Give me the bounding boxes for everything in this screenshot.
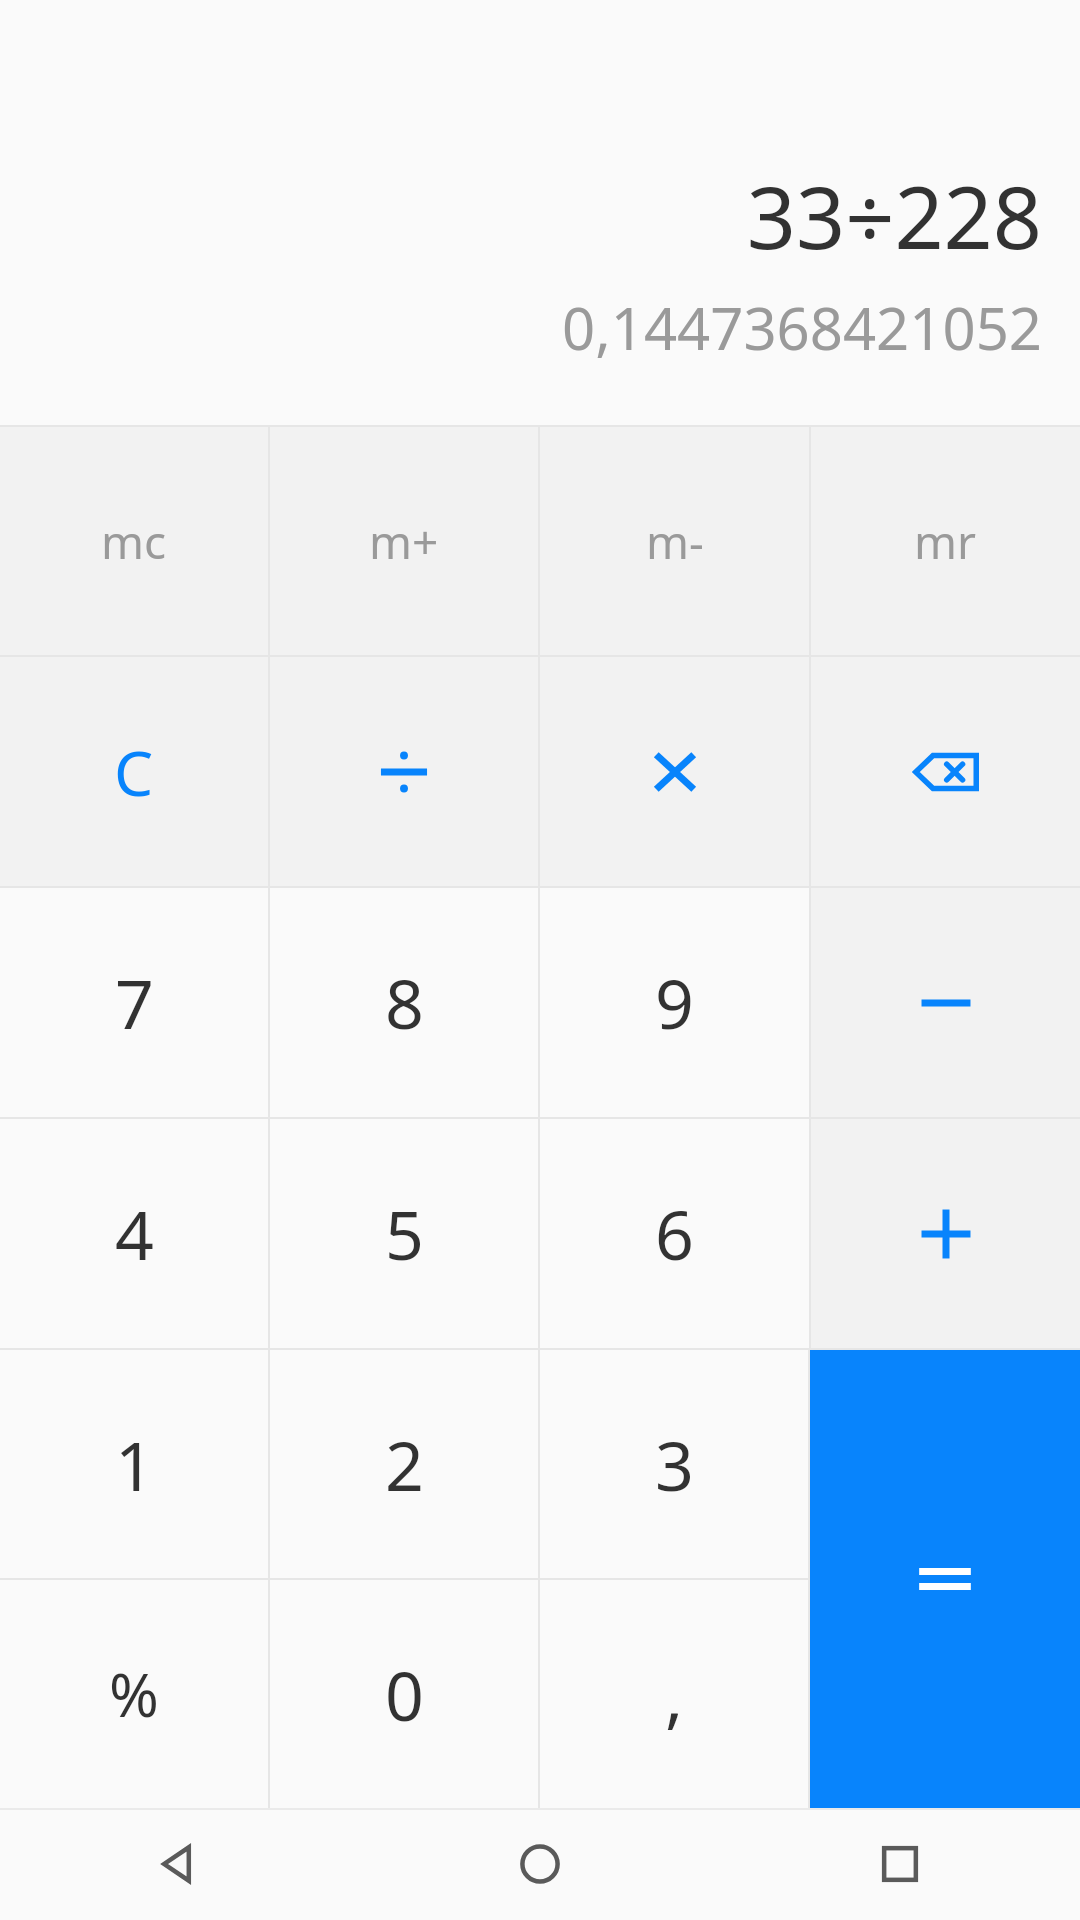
button[interactable]: 6: [540, 1119, 809, 1348]
button[interactable]: Divide: [270, 657, 538, 886]
button[interactable]: Backspace: [811, 657, 1080, 886]
button[interactable]: mr: [811, 427, 1080, 655]
staticText: ,: [665, 1648, 684, 1741]
staticText: C: [114, 730, 154, 814]
button[interactable]: 3: [540, 1350, 808, 1578]
staticText: m+: [369, 510, 439, 573]
staticText: %: [109, 1653, 159, 1735]
staticText: m-: [646, 510, 704, 573]
staticText: 7: [115, 956, 154, 1049]
button[interactable]: 1: [0, 1350, 268, 1578]
staticText: mc: [101, 510, 167, 573]
staticText: 33÷228: [746, 157, 1042, 274]
button[interactable]: Recents: [720, 1808, 1080, 1920]
staticText: 2: [385, 1418, 424, 1511]
staticText: 0,1447368421052: [561, 288, 1042, 367]
button[interactable]: ,: [540, 1580, 808, 1808]
button[interactable]: Plus: [811, 1119, 1080, 1348]
button[interactable]: Equals: [810, 1350, 1080, 1808]
staticText: mr: [914, 510, 977, 573]
button[interactable]: Back: [0, 1808, 360, 1920]
staticText: 6: [655, 1187, 694, 1280]
staticText: 5: [385, 1187, 424, 1280]
button[interactable]: mc: [0, 427, 268, 655]
staticText: 9: [655, 956, 694, 1049]
button[interactable]: 0: [270, 1580, 538, 1808]
staticText: 4: [115, 1187, 154, 1280]
button[interactable]: C: [0, 657, 268, 886]
staticText: 0: [385, 1648, 424, 1741]
button[interactable]: 5: [270, 1119, 538, 1348]
staticText: 8: [385, 956, 424, 1049]
button[interactable]: Minus: [811, 888, 1080, 1117]
button[interactable]: Multiply: [540, 657, 809, 886]
button[interactable]: %: [0, 1580, 268, 1808]
button[interactable]: 2: [270, 1350, 538, 1578]
button[interactable]: 8: [270, 888, 538, 1117]
staticText: 1: [115, 1418, 154, 1511]
button[interactable]: 9: [540, 888, 809, 1117]
button[interactable]: 7: [0, 888, 268, 1117]
button[interactable]: m-: [540, 427, 809, 655]
button[interactable]: m+: [270, 427, 538, 655]
button[interactable]: Home: [360, 1808, 720, 1920]
button[interactable]: 4: [0, 1119, 268, 1348]
staticText: 3: [655, 1418, 694, 1511]
